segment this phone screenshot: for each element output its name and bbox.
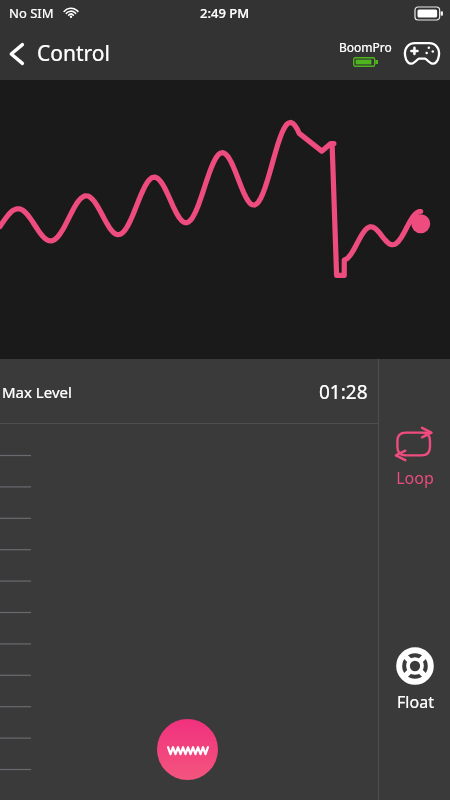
staticText: 2:49 PM bbox=[200, 4, 250, 22]
button[interactable]: Vibration pattern bbox=[157, 719, 218, 780]
staticText: BoomPro bbox=[339, 39, 392, 55]
button[interactable]: Float bbox=[389, 642, 441, 717]
button[interactable]: Loop bbox=[387, 421, 443, 493]
staticText: Loop bbox=[396, 467, 434, 489]
staticText: No SIM bbox=[9, 4, 54, 22]
staticText: Control bbox=[37, 39, 110, 68]
button[interactable]: Gamepad controller bbox=[401, 37, 443, 69]
button[interactable]: Control bbox=[0, 33, 120, 74]
button[interactable]: BoomPro bbox=[337, 35, 394, 71]
staticText: 01:28 bbox=[319, 379, 368, 405]
staticText: Float bbox=[397, 691, 434, 713]
staticText: Max Level bbox=[2, 382, 72, 402]
